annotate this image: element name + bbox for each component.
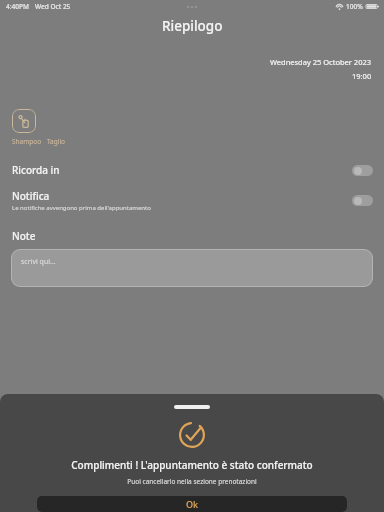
staticText: Taglio [47, 137, 66, 146]
staticText: 19:00 [352, 71, 372, 81]
button[interactable]: scrivi qui... [11, 249, 373, 287]
button[interactable]: Ricorda in [0, 160, 384, 180]
button[interactable]: Ok [37, 496, 347, 512]
staticText: Note [12, 229, 36, 243]
staticText: Complimenti ! L'appuntamento è stato con… [71, 458, 313, 472]
staticText: scrivi qui... [21, 257, 56, 267]
staticText: Puoi cancellarlo nella sezione prenotazi… [127, 477, 257, 486]
button[interactable]: Shampoo e Taglio [12, 109, 36, 133]
staticText: Riepilogo [162, 17, 223, 35]
staticText: Notifica [12, 189, 50, 203]
button[interactable]: Notifica [0, 186, 384, 215]
staticText: Shampoo [12, 137, 42, 146]
staticText: 100% [346, 2, 363, 11]
staticText: Le notifiche avvengono prima dell'appunt… [12, 204, 151, 212]
staticText: Wed Oct 25 [35, 2, 71, 11]
staticText: 4:40PM [6, 2, 29, 11]
staticText: Wednesday 25 October 2023 [270, 57, 372, 67]
staticText: Ricorda in [12, 163, 60, 177]
staticText: Ok [186, 498, 199, 510]
